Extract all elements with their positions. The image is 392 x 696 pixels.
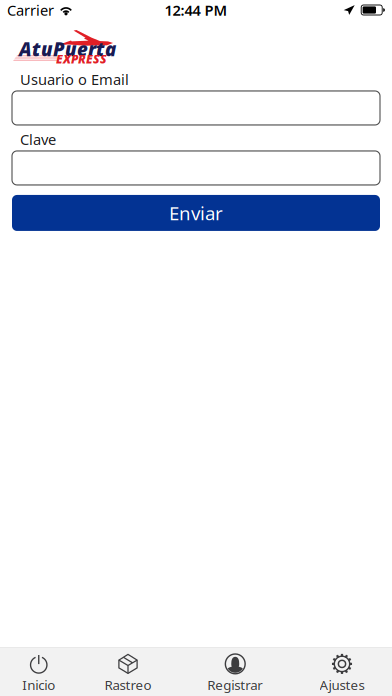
staticText: Ajustes — [319, 676, 364, 694]
staticText: Clave — [20, 129, 56, 149]
button[interactable]: Enviar — [12, 195, 380, 231]
staticText: Usuario o Email — [20, 69, 129, 89]
button[interactable]: Inicio — [0, 647, 77, 696]
staticText: Registrar — [207, 676, 263, 694]
staticText: EXPRESS — [56, 51, 107, 67]
button[interactable]: Rastreo — [77, 647, 178, 696]
button[interactable]: Ajustes — [292, 647, 392, 696]
button[interactable]: Registrar — [178, 647, 292, 696]
staticText: 12:44 PM — [164, 0, 227, 20]
staticText: Rastreo — [104, 676, 151, 694]
staticText: AtuPuerta — [19, 36, 116, 61]
staticText: Enviar — [169, 201, 223, 225]
staticText: Carrier — [7, 0, 54, 20]
staticText: Inicio — [22, 676, 55, 694]
